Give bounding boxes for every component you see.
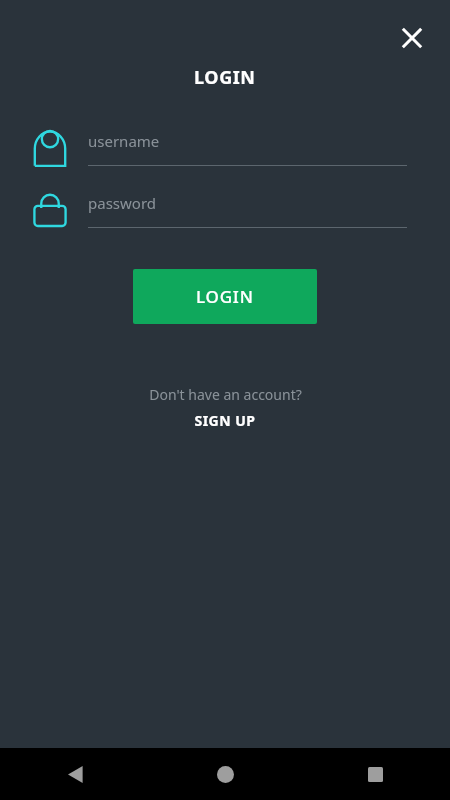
staticText: password — [88, 193, 156, 213]
button[interactable]: SIGN UP — [182, 409, 268, 432]
button[interactable]: Recent apps — [300, 748, 450, 800]
button[interactable]: Close — [390, 16, 434, 60]
button[interactable]: username — [28, 124, 407, 172]
button[interactable]: LOGIN — [133, 269, 317, 324]
button[interactable]: Back — [0, 748, 150, 800]
staticText: LOGIN — [196, 285, 254, 308]
button[interactable]: password — [28, 186, 407, 234]
staticText: SIGN UP — [194, 411, 256, 430]
staticText: LOGIN — [194, 65, 256, 90]
button[interactable]: Home — [150, 748, 300, 800]
staticText: username — [88, 131, 160, 151]
staticText: Don't have an account? — [149, 385, 302, 404]
